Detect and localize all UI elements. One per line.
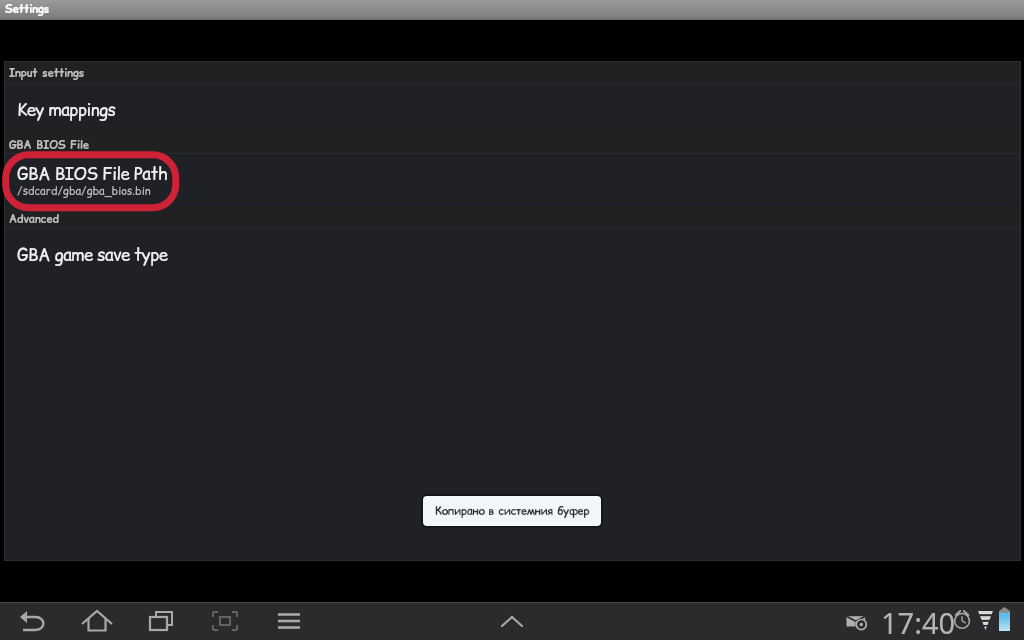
staticText: Advanced	[9, 211, 59, 226]
button[interactable]: Home	[80, 604, 114, 638]
staticText: Settings	[5, 1, 50, 16]
button[interactable]: Recent apps	[144, 604, 178, 638]
staticText: GBA BIOS File	[9, 137, 90, 152]
button[interactable]: Expand	[495, 604, 529, 638]
button[interactable]: Menu	[272, 604, 306, 638]
staticText: Копирано в системния буфер	[435, 503, 590, 518]
button[interactable]: Копирано в системния буфер	[423, 496, 601, 526]
button[interactable]: GBA game save type	[5, 227, 1020, 287]
staticText: Input settings	[9, 65, 85, 80]
button[interactable]: Email	[845, 613, 869, 629]
button[interactable]: Screenshot	[208, 604, 242, 638]
staticText: Key mappings	[17, 98, 116, 121]
button[interactable]: Back	[16, 604, 50, 638]
button[interactable]: Key mappings	[5, 83, 1020, 131]
staticText: 17:40	[881, 603, 956, 640]
staticText: GBA game save type	[17, 243, 168, 266]
button[interactable]: GBA BIOS File Path	[5, 153, 1020, 206]
staticText: /sdcard/gba/gba_bios.bin	[17, 183, 151, 198]
staticText: GBA BIOS File Path	[17, 162, 168, 185]
